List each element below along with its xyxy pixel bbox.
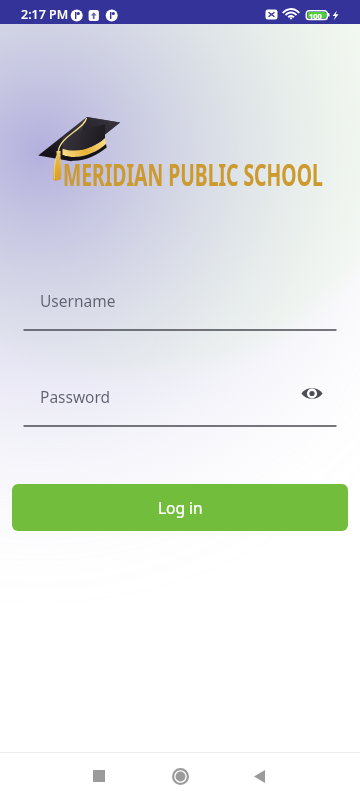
button[interactable]: Username bbox=[0, 285, 360, 331]
staticText: Username bbox=[40, 290, 116, 311]
staticText: Log in bbox=[158, 497, 203, 518]
button[interactable]: Show password bbox=[298, 379, 326, 407]
staticText: Password bbox=[40, 386, 111, 407]
button[interactable]: Back bbox=[235, 752, 283, 800]
button[interactable]: Log in bbox=[12, 484, 348, 531]
button[interactable]: Recent apps bbox=[75, 752, 123, 800]
button[interactable]: Home bbox=[156, 752, 204, 800]
button[interactable]: Password bbox=[0, 381, 360, 427]
staticText: 2:17 PM bbox=[21, 6, 69, 23]
staticText: MERIDIAN PUBLIC SCHOOL bbox=[63, 154, 323, 195]
staticText: 100 bbox=[309, 11, 322, 21]
